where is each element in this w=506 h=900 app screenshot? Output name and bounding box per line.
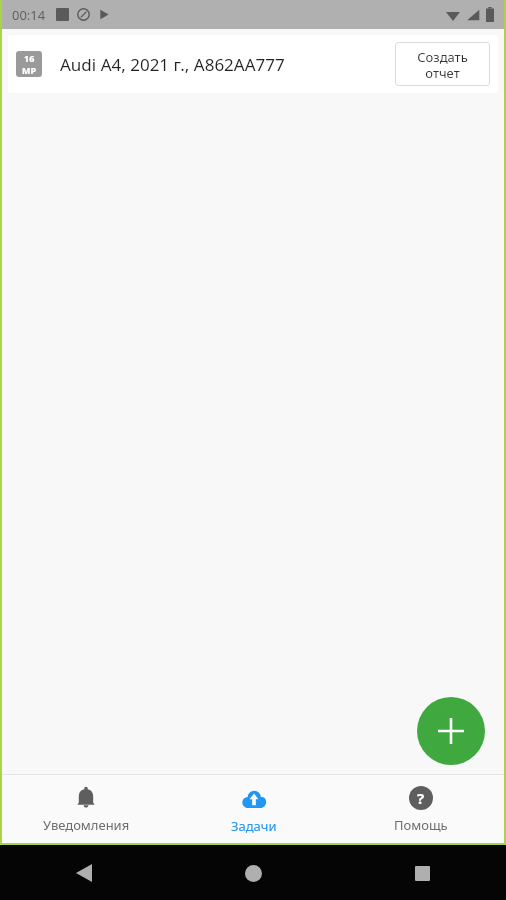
staticText: ? <box>417 788 425 808</box>
button[interactable]: Обзор <box>405 856 439 890</box>
staticText: Уведомления <box>43 816 130 834</box>
button[interactable]: Задачи <box>170 777 337 841</box>
button[interactable]: Создать отчет <box>395 42 490 86</box>
button[interactable]: Добавить <box>417 697 485 765</box>
button[interactable]: 16 <box>8 35 498 93</box>
staticText: 00:14 <box>12 6 46 24</box>
staticText: MP <box>22 64 37 76</box>
button[interactable]: Назад <box>67 856 101 890</box>
staticText: Создать отчет <box>417 48 468 81</box>
staticText: 16 <box>24 52 35 64</box>
staticText: Задачи <box>231 817 277 835</box>
staticText: Помощь <box>394 816 448 834</box>
button[interactable]: ? <box>337 778 504 840</box>
button[interactable]: Уведомления <box>2 778 170 840</box>
staticText: Audi A4, 2021 г., A862AA777 <box>60 53 285 76</box>
button[interactable]: Главный экран <box>236 856 270 890</box>
